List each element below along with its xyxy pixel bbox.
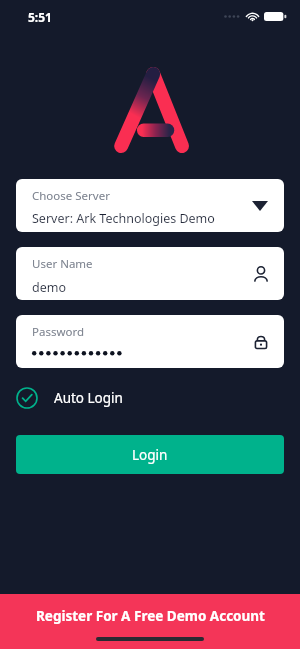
button[interactable]: Register For A Free Demo Account xyxy=(0,594,300,649)
staticText: Login xyxy=(132,446,168,464)
button[interactable]: Login xyxy=(16,435,284,474)
staticText: Auto Login xyxy=(54,389,123,407)
button[interactable]: Choose Server xyxy=(16,179,284,232)
staticText: 5:51 xyxy=(28,9,52,25)
staticText: Password xyxy=(32,324,85,340)
staticText: User Name xyxy=(32,256,93,272)
staticText: Register For A Free Demo Account xyxy=(36,607,265,625)
button[interactable]: Auto Login xyxy=(16,386,123,410)
staticText: Choose Server xyxy=(32,188,110,204)
other: Password xyxy=(252,333,270,351)
staticText: Server: Ark Technologies Demo xyxy=(32,210,215,227)
other: User xyxy=(252,265,270,283)
staticText: demo xyxy=(32,279,66,296)
button[interactable]: User Name xyxy=(16,247,284,300)
button[interactable]: Password xyxy=(16,315,284,368)
